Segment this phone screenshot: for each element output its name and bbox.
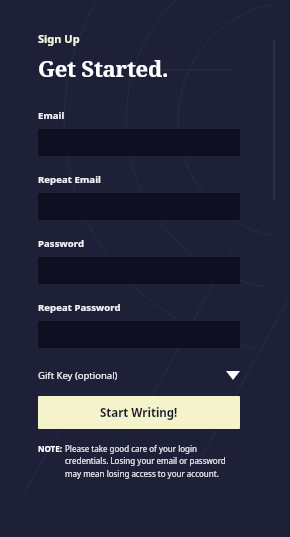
staticText: Email (38, 109, 65, 122)
button[interactable]: Start Writing! (38, 396, 240, 429)
staticText: Repeat Email (38, 173, 102, 186)
staticText: Gift Key (optional) (38, 369, 118, 382)
staticText: Repeat Password (38, 301, 121, 314)
staticText: Sign Up (38, 31, 80, 46)
staticText: Start Writing! (100, 405, 178, 421)
staticText: Password (38, 237, 85, 250)
staticText: Get Started. (38, 53, 169, 83)
button[interactable]: Gift Key (optional) (38, 366, 240, 384)
staticText: NOTE: (38, 443, 62, 454)
other: Expand gift key options (226, 371, 240, 380)
staticText: Please take good care of your login cred… (65, 443, 240, 480)
